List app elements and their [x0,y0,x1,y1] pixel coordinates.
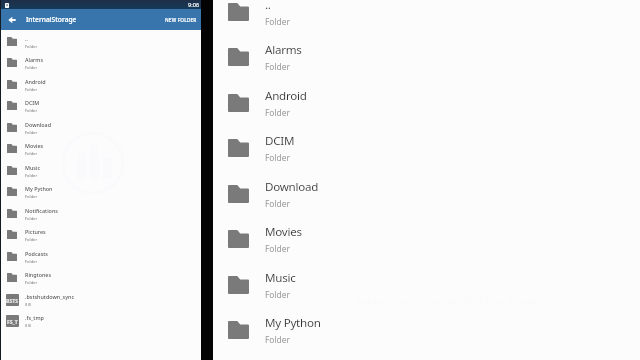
staticText: Android [265,88,307,104]
button[interactable]: Android [213,80,640,125]
button[interactable]: Movies [0,138,201,160]
button[interactable]: Alarms [213,34,640,79]
button[interactable]: Back [5,12,19,28]
button[interactable]: My Python [0,181,201,203]
staticText: Music [25,164,41,171]
staticText: Folder [265,243,290,254]
staticText: Notifications [25,207,58,214]
staticText: Folder [25,237,38,242]
staticText: Movies [265,224,302,240]
staticText: Folder [25,65,38,70]
staticText: Folder [265,289,290,300]
button[interactable]: Music [0,160,201,182]
button[interactable]: BSTS [0,289,201,311]
staticText: .bstshutdown_sync [25,293,75,300]
staticText: InternalStorage [26,15,77,24]
staticText: .fs_tmp [25,314,44,321]
staticText: Folder [265,198,290,209]
button[interactable]: My Python [213,307,640,352]
staticText: Podcasts [25,250,48,257]
staticText: Pictures [25,228,46,235]
button[interactable]: .. [0,31,201,53]
staticText: My Python [265,315,321,331]
staticText: Folder [25,194,38,199]
staticText: DCIM [265,133,295,149]
staticText: BSTS [6,297,19,304]
staticText: NEW FOLDER [165,17,197,23]
button[interactable]: DCIM [0,95,201,117]
staticText: Folder [25,87,38,92]
staticText: Music [265,270,296,286]
staticText: Alarms [265,42,302,58]
button[interactable]: Ringtones [0,267,201,289]
button[interactable]: Movies [213,216,640,261]
staticText: Folder [25,259,38,264]
staticText: Folder [25,108,38,113]
button[interactable]: Download [0,117,201,139]
staticText: Folder [25,216,38,221]
staticText: .. [25,35,28,42]
button[interactable]: Download [213,171,640,216]
staticText: Ringtones [25,271,52,278]
button[interactable]: NEW FOLDER [165,17,197,23]
staticText: My Python [25,185,53,192]
button[interactable]: Notifications [0,203,201,225]
staticText: Alarms [25,56,44,63]
staticText: Folder [265,107,290,118]
staticText: FS_T [7,318,18,325]
staticText: Movies [25,142,44,149]
staticText: Folder [25,280,38,285]
staticText: Download [25,121,52,128]
staticText: .. [265,0,271,13]
staticText: Folder [265,16,290,27]
staticText: DCIM [25,99,40,106]
staticText: Download [265,179,319,195]
button[interactable]: .. [213,0,640,34]
staticText: Folder [25,173,38,178]
staticText: 0 B [25,323,31,328]
staticText: Folder [265,61,290,72]
button[interactable]: DCIM [213,125,640,170]
button[interactable]: FS_T [0,310,201,332]
button[interactable]: Podcasts [0,246,201,268]
staticText: Android [25,78,46,85]
staticText: 9:06 [188,1,200,9]
staticText: Folder [25,151,38,156]
staticText: Folder [25,130,38,135]
staticText: 0 B [25,302,31,307]
button[interactable]: Alarms [0,52,201,74]
button[interactable]: Android [0,74,201,96]
staticText: Folder [265,334,290,345]
staticText: Folder [25,44,38,49]
button[interactable]: Pictures [0,224,201,246]
button[interactable]: Music [213,262,640,307]
staticText: Folder [265,152,290,163]
